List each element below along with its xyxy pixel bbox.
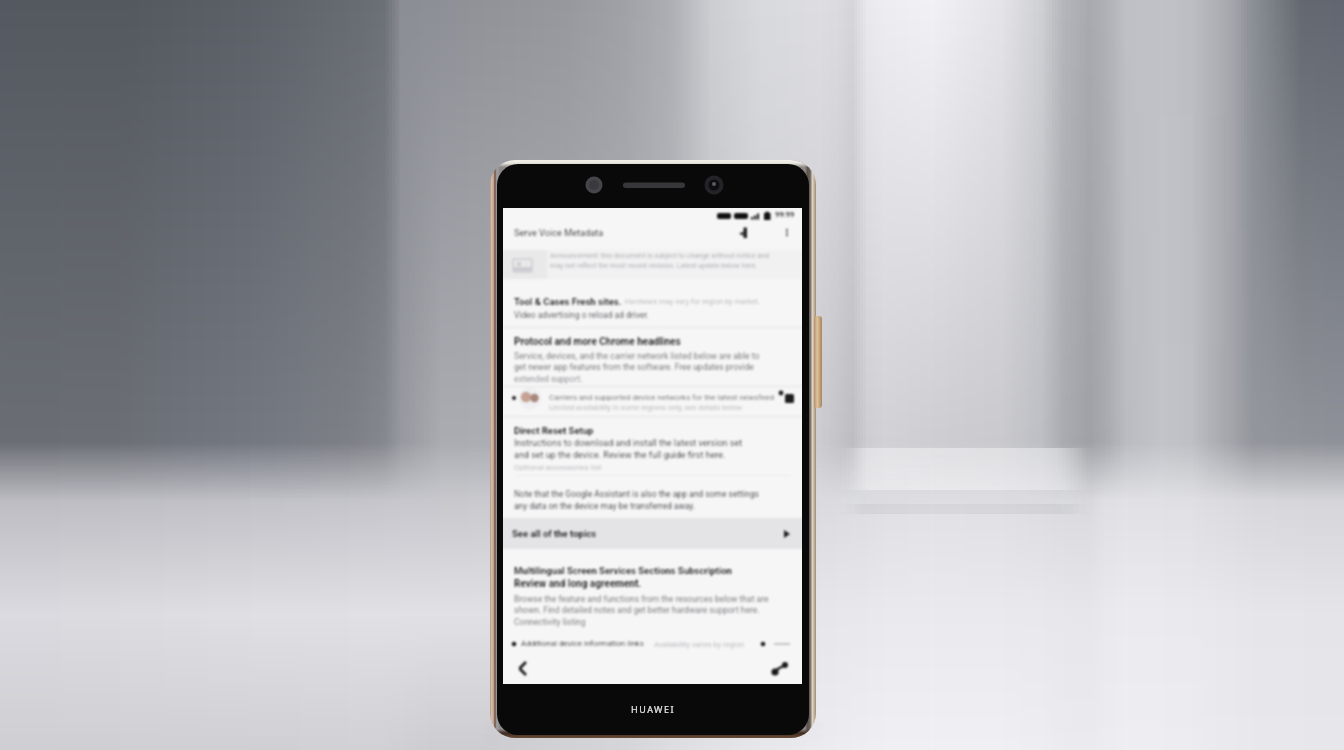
staticText: 99:99	[775, 210, 795, 219]
staticText: may not reflect the most recent revision…	[550, 262, 757, 270]
staticText: Connectivity listing	[514, 617, 586, 627]
staticText: Direct Reset Setup	[514, 425, 594, 436]
button[interactable]: Cast	[737, 225, 763, 243]
staticText: extended support.	[514, 374, 583, 384]
staticText: Serve Voice Metadata	[514, 227, 604, 238]
staticText: Review and long agreement.	[514, 578, 642, 590]
staticText: Protocol and more Chrome headlines	[514, 336, 681, 348]
staticText: Browse the feature and functions from th…	[514, 594, 769, 604]
staticText: Availability varies by region	[654, 640, 744, 649]
staticText: get newer app features from the software…	[514, 362, 754, 372]
button[interactable]: Serve Voice Metadata	[511, 225, 641, 243]
staticText: shown. Find detailed notes and get bette…	[514, 605, 760, 615]
button[interactable]: More options	[777, 225, 797, 243]
staticText: Optional accessories list	[514, 463, 602, 472]
staticText: Limited availability in some regions onl…	[549, 403, 743, 412]
staticText: Note that the Google Assistant is also t…	[514, 489, 759, 499]
staticText: and set up the device. Review the full g…	[514, 450, 726, 461]
staticText: Carriers and supported device networks f…	[549, 393, 774, 402]
staticText: See all of the topics	[512, 528, 597, 539]
button[interactable]: See all of the topics	[503, 518, 802, 549]
staticText: Tool & Cases Fresh sites.	[514, 296, 622, 307]
button[interactable]: Power button	[814, 316, 822, 408]
staticText: Instructions to download and install the…	[514, 438, 743, 449]
staticText: ⋮	[782, 227, 792, 239]
staticText: Video advertising o reload ad driver.	[514, 310, 649, 320]
staticText: any data on the device may be transferre…	[514, 501, 696, 511]
staticText: HUAWEI	[631, 703, 675, 715]
staticText: Announcement: this document is subject t…	[550, 252, 769, 260]
staticText: Multilingual Screen Services Sections Su…	[514, 565, 732, 576]
staticText: Hardware may vary for region by market.	[625, 297, 760, 306]
staticText: ◂▌	[739, 228, 751, 238]
staticText: Service, devices, and the carrier networ…	[514, 351, 762, 361]
staticText: Additional device information links	[521, 639, 644, 648]
